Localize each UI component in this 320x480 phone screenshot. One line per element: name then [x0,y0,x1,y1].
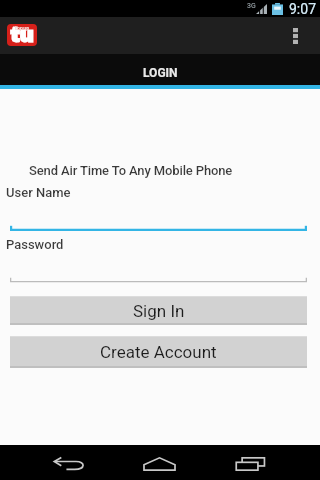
staticText: Send Air Time To Any Mobile Phone [29,163,233,178]
button[interactable]: Recents [205,446,295,480]
staticText: tu [10,24,34,46]
button[interactable]: LOGIN [0,54,320,85]
staticText: Create Account [100,342,217,362]
staticText: Password [6,237,64,252]
button[interactable]: Sign In [10,296,307,325]
button[interactable]: Back [24,446,114,480]
staticText: Sign In [133,301,185,321]
staticText: LOGIN [143,66,178,80]
staticText: User Name [6,185,71,200]
button[interactable]: More options [277,17,314,54]
button[interactable]: Create Account [10,336,307,368]
staticText: topup [15,25,30,31]
button[interactable]: App logo [7,24,37,46]
staticText: 3G [247,2,256,10]
button[interactable]: Home [114,446,204,480]
staticText: 9:07 [289,1,316,17]
